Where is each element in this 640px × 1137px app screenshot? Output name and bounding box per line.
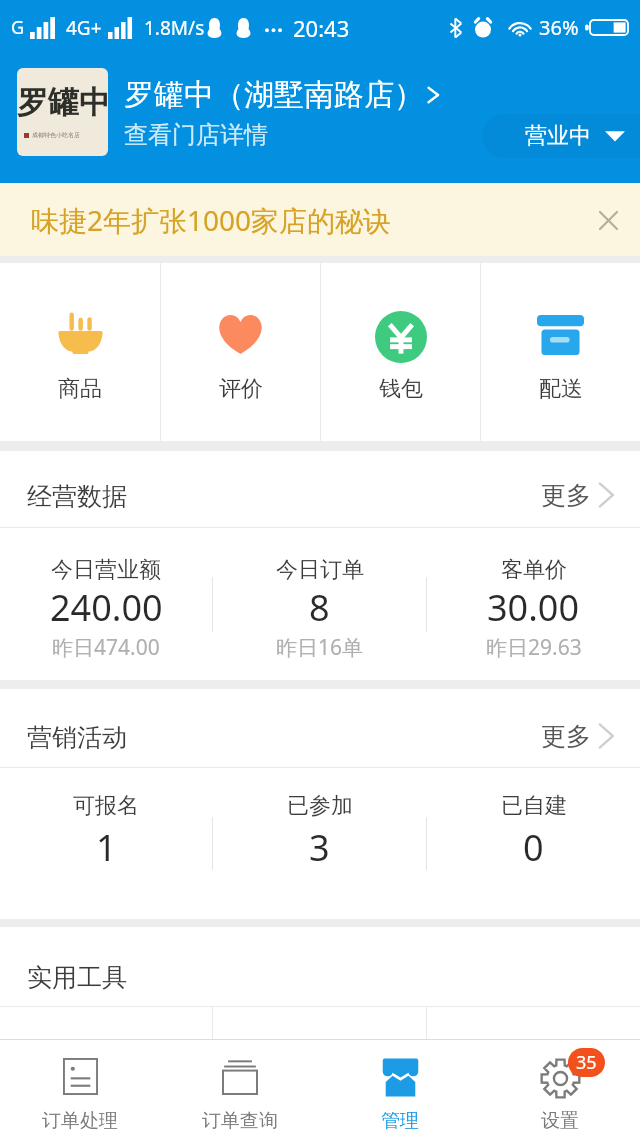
staticText: 已自建 <box>501 792 567 820</box>
staticText: 订单处理 <box>42 1109 118 1133</box>
button[interactable]: 配送 <box>481 263 640 441</box>
staticText: 20:43 <box>293 13 350 43</box>
staticText: 营业中 <box>525 122 591 150</box>
staticText: 经营数据 <box>27 481 127 512</box>
staticText: 35 <box>576 1050 597 1075</box>
staticText: 8 <box>309 583 330 632</box>
staticText: 昨日474.00 <box>52 633 160 662</box>
staticText: 设置 <box>541 1109 579 1133</box>
staticText: 1.8M/s <box>144 15 205 41</box>
staticText: 成都特色小吃名店 <box>32 131 80 139</box>
button[interactable]: 钱包 <box>321 263 480 441</box>
staticText: 客单价 <box>501 556 567 584</box>
button[interactable]: 管理 <box>320 1039 480 1137</box>
staticText: 240.00 <box>50 583 163 632</box>
staticText: 罗罐中（湖墅南路店） <box>124 76 424 114</box>
button[interactable]: 评价 <box>161 263 320 441</box>
staticText: 更多 <box>541 721 591 752</box>
button[interactable]: 订单查询 <box>160 1039 320 1137</box>
staticText: 查看门店详情 <box>124 120 268 150</box>
staticText: 已参加 <box>287 792 353 820</box>
button[interactable]: 今日订单 <box>213 528 426 680</box>
staticText: 0 <box>523 823 544 872</box>
staticText: 管理 <box>381 1109 419 1133</box>
staticText: 配送 <box>539 375 583 403</box>
staticText: 今日营业额 <box>51 556 161 584</box>
staticText: 昨日29.63 <box>486 633 582 662</box>
button[interactable]: Store logo <box>17 68 108 156</box>
staticText: 订单查询 <box>202 1109 278 1133</box>
staticText: 评价 <box>219 375 263 403</box>
button[interactable]: 更多 <box>541 720 615 752</box>
staticText: 实用工具 <box>27 962 127 993</box>
button[interactable]: 营业中 <box>482 114 640 158</box>
staticText: 30.00 <box>487 583 580 632</box>
staticText: 味捷2年扩张1000家店的秘诀 <box>31 201 392 239</box>
button[interactable]: 已自建 <box>427 768 640 919</box>
staticText: 商品 <box>58 375 102 403</box>
staticText: 36% <box>539 14 579 41</box>
staticText: 1 <box>96 823 117 872</box>
staticText: 更多 <box>541 480 591 511</box>
staticText: 营销活动 <box>27 722 127 753</box>
staticText: G <box>11 15 25 40</box>
button[interactable]: 已参加 <box>213 768 426 919</box>
button[interactable]: 商品 <box>0 263 160 441</box>
button[interactable]: 客单价 <box>427 528 640 680</box>
staticText: 4G+ <box>66 15 102 41</box>
staticText: 3 <box>309 823 330 872</box>
button[interactable]: 今日营业额 <box>0 528 212 680</box>
button[interactable]: 味捷2年扩张1000家店的秘诀 <box>0 183 640 256</box>
button[interactable]: Close banner <box>588 200 628 240</box>
staticText: 可报名 <box>73 792 139 820</box>
button[interactable]: 订单处理 <box>0 1039 160 1137</box>
staticText: 钱包 <box>379 375 423 403</box>
staticText: 昨日16单 <box>276 633 364 662</box>
button[interactable]: 35 <box>480 1039 640 1137</box>
button[interactable]: 可报名 <box>0 768 212 919</box>
button[interactable]: 更多 <box>541 479 615 511</box>
staticText: 罗罐中 <box>17 83 108 122</box>
staticText: 今日订单 <box>276 556 364 584</box>
